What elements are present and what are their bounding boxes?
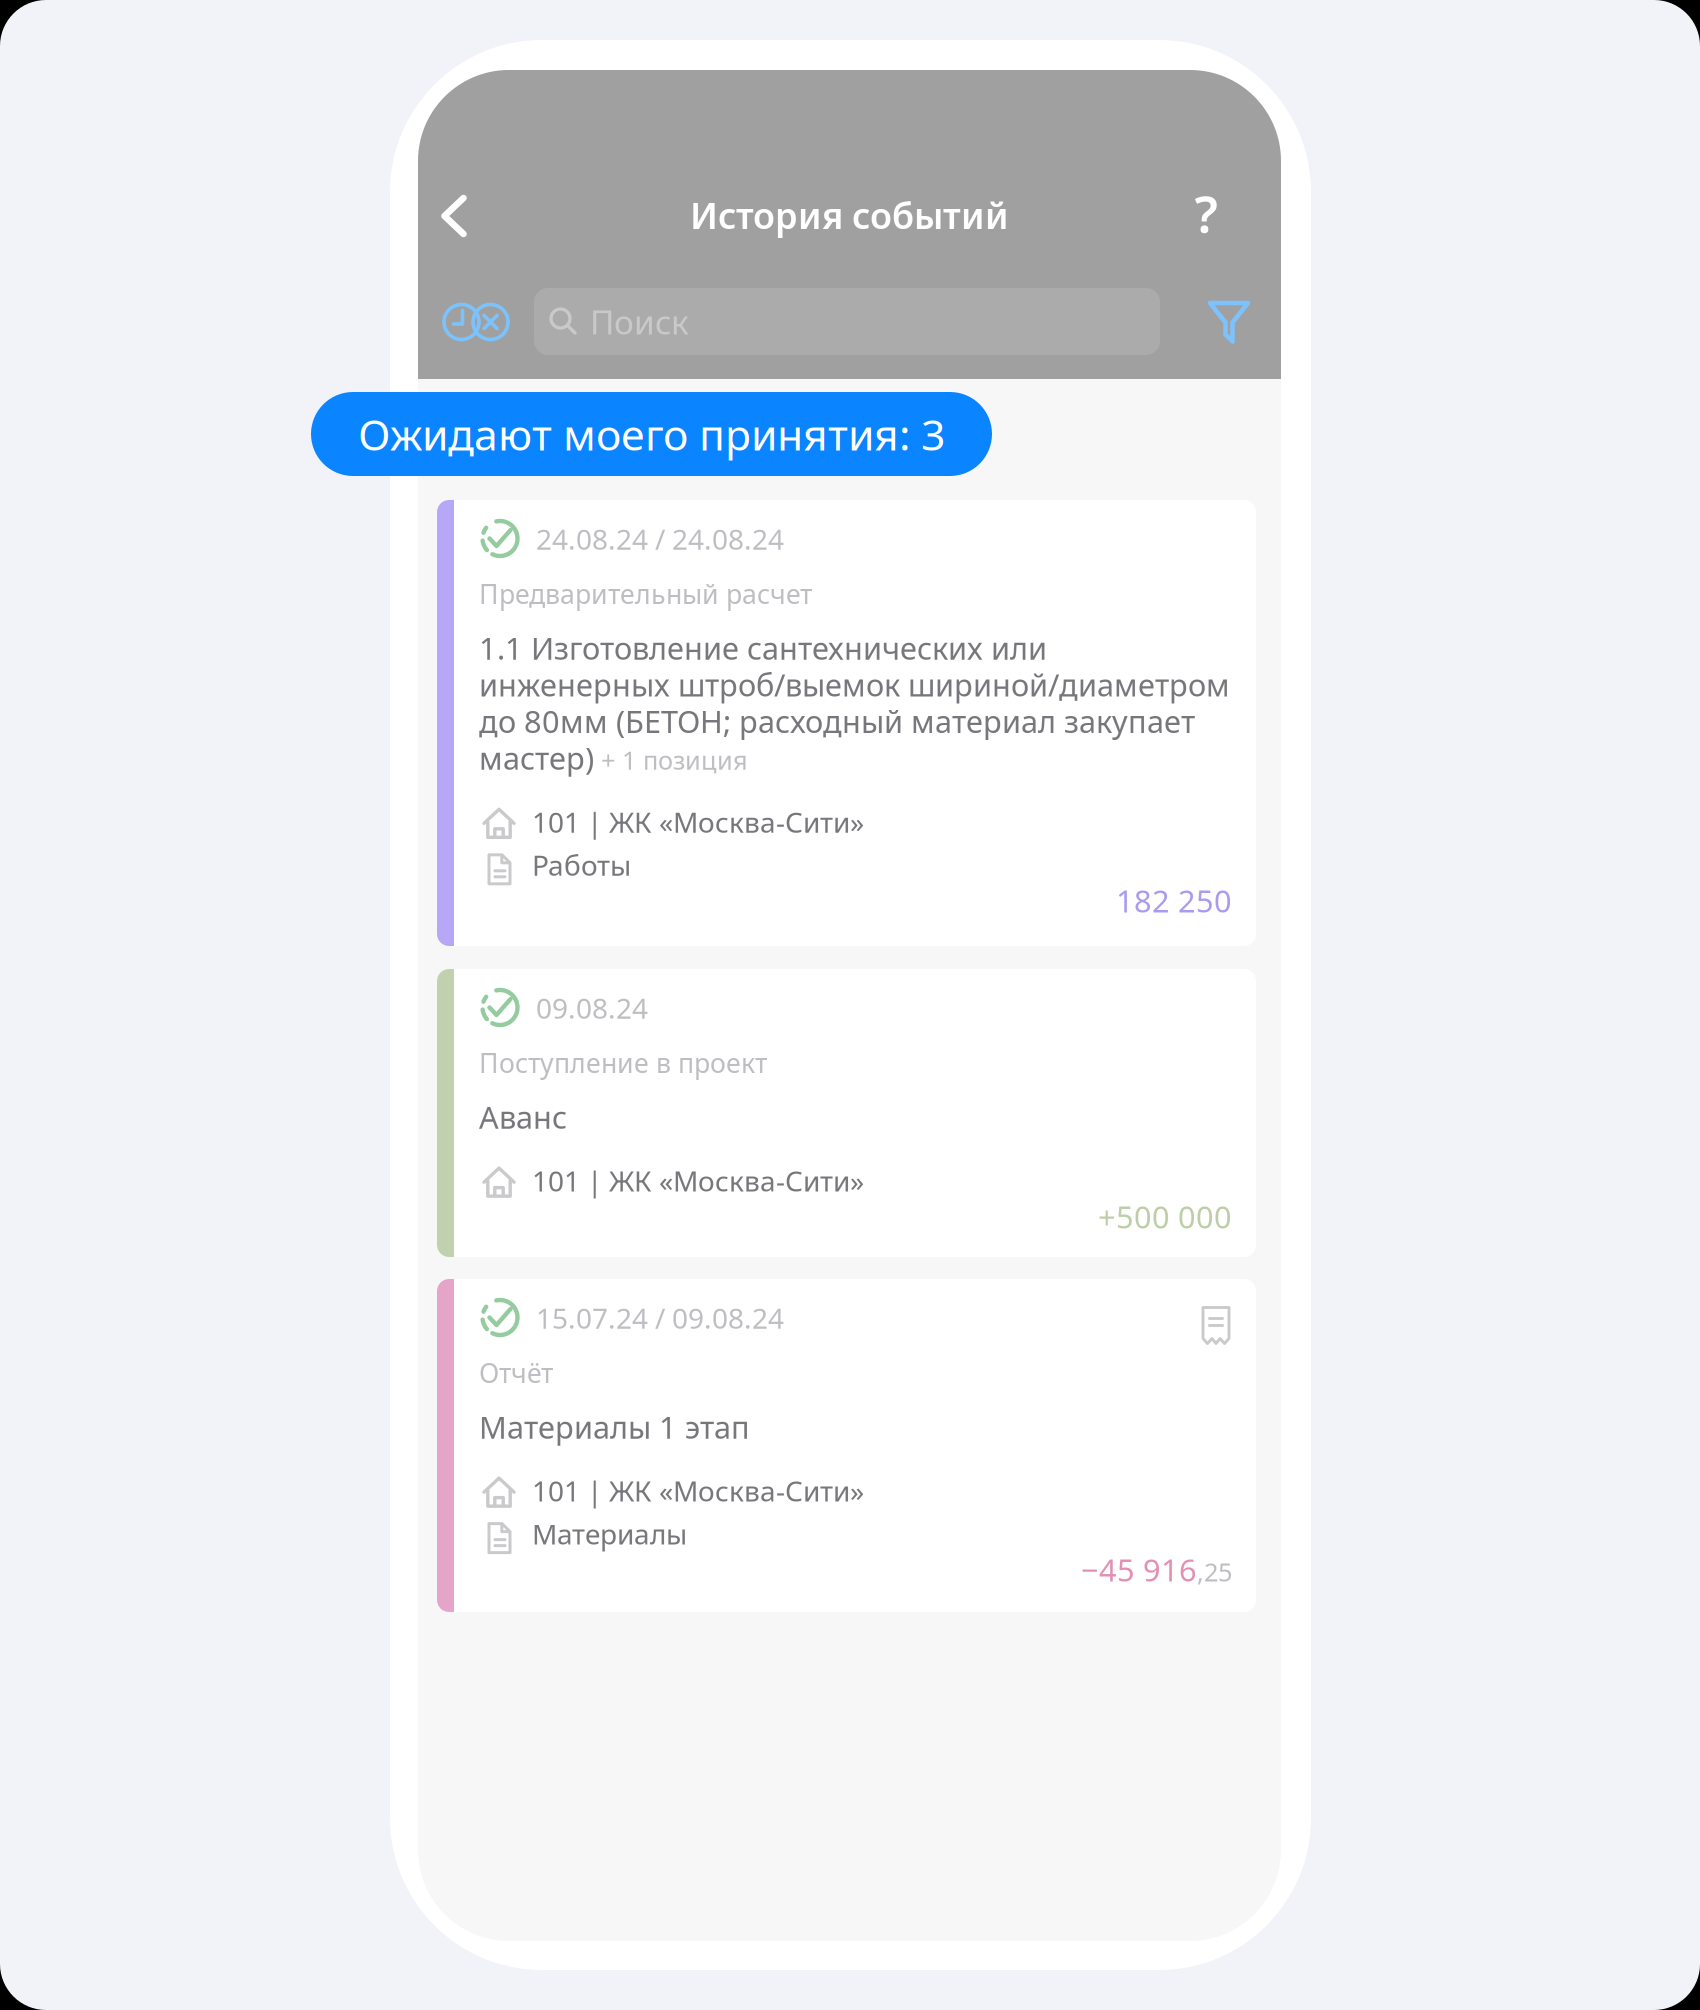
staticText: Ожидают моего принятия: 3 bbox=[358, 406, 945, 462]
staticText: Материалы 1 этап bbox=[479, 1406, 750, 1447]
staticText: −45 916,25 bbox=[1081, 1549, 1232, 1590]
staticText: 101 | ЖК «Москва-Сити» bbox=[532, 803, 864, 840]
button[interactable]: Recent history bbox=[442, 301, 510, 343]
staticText: 09.08.24 bbox=[536, 989, 648, 1027]
button[interactable]: 24.08.24 / 24.08.24 bbox=[437, 500, 1256, 946]
button[interactable]: Help bbox=[1180, 185, 1232, 241]
staticText: 101 | ЖК «Москва-Сити» bbox=[532, 1472, 864, 1509]
staticText: Поступление в проект bbox=[479, 1045, 767, 1080]
staticText: ? bbox=[1194, 179, 1217, 247]
staticText: Аванс bbox=[479, 1096, 567, 1137]
button[interactable]: Back bbox=[428, 188, 480, 244]
button[interactable]: Ожидают моего принятия: 3 bbox=[311, 392, 992, 476]
staticText: +500 000 bbox=[1098, 1196, 1232, 1237]
staticText: 101 | ЖК «Москва-Сити» bbox=[532, 1162, 864, 1199]
staticText: 1.1 Изготовление сантехнических или инже… bbox=[479, 627, 1230, 778]
staticText: Материалы bbox=[532, 1515, 687, 1552]
button[interactable]: 09.08.24 bbox=[437, 969, 1256, 1257]
staticText: 24.08.24 / 24.08.24 bbox=[536, 520, 784, 558]
button[interactable]: Filter bbox=[1205, 297, 1253, 347]
staticText: 182 250 bbox=[1116, 880, 1232, 921]
staticText: История событий bbox=[690, 191, 1009, 239]
staticText: 15.07.24 / 09.08.24 bbox=[536, 1299, 784, 1337]
staticText: Работы bbox=[532, 846, 631, 883]
staticText: Отчёт bbox=[479, 1355, 553, 1390]
button[interactable]: 15.07.24 / 09.08.24 bbox=[437, 1279, 1256, 1612]
button[interactable]: Поиск bbox=[534, 288, 1160, 355]
staticText: Предварительный расчет bbox=[479, 576, 812, 611]
staticText: Поиск bbox=[590, 299, 689, 344]
